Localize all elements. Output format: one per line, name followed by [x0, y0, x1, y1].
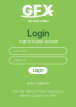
staticText: Login	[27, 28, 49, 38]
button[interactable]: Forgot Password?	[23, 81, 53, 86]
button[interactable]: Login	[28, 67, 47, 74]
staticText: GFX	[22, 2, 54, 19]
staticText: If you are having trouble logging in,	[11, 90, 64, 93]
staticText: PERFORMANCE BRAND	[27, 20, 48, 22]
staticText: Password	[14, 59, 26, 62]
staticText: Username	[14, 49, 27, 53]
staticText: Login	[33, 68, 43, 73]
staticText: Forgot Password?	[26, 82, 49, 85]
staticText: please contact us here	[19, 94, 56, 97]
staticText: Sign in to your account	[18, 39, 57, 44]
